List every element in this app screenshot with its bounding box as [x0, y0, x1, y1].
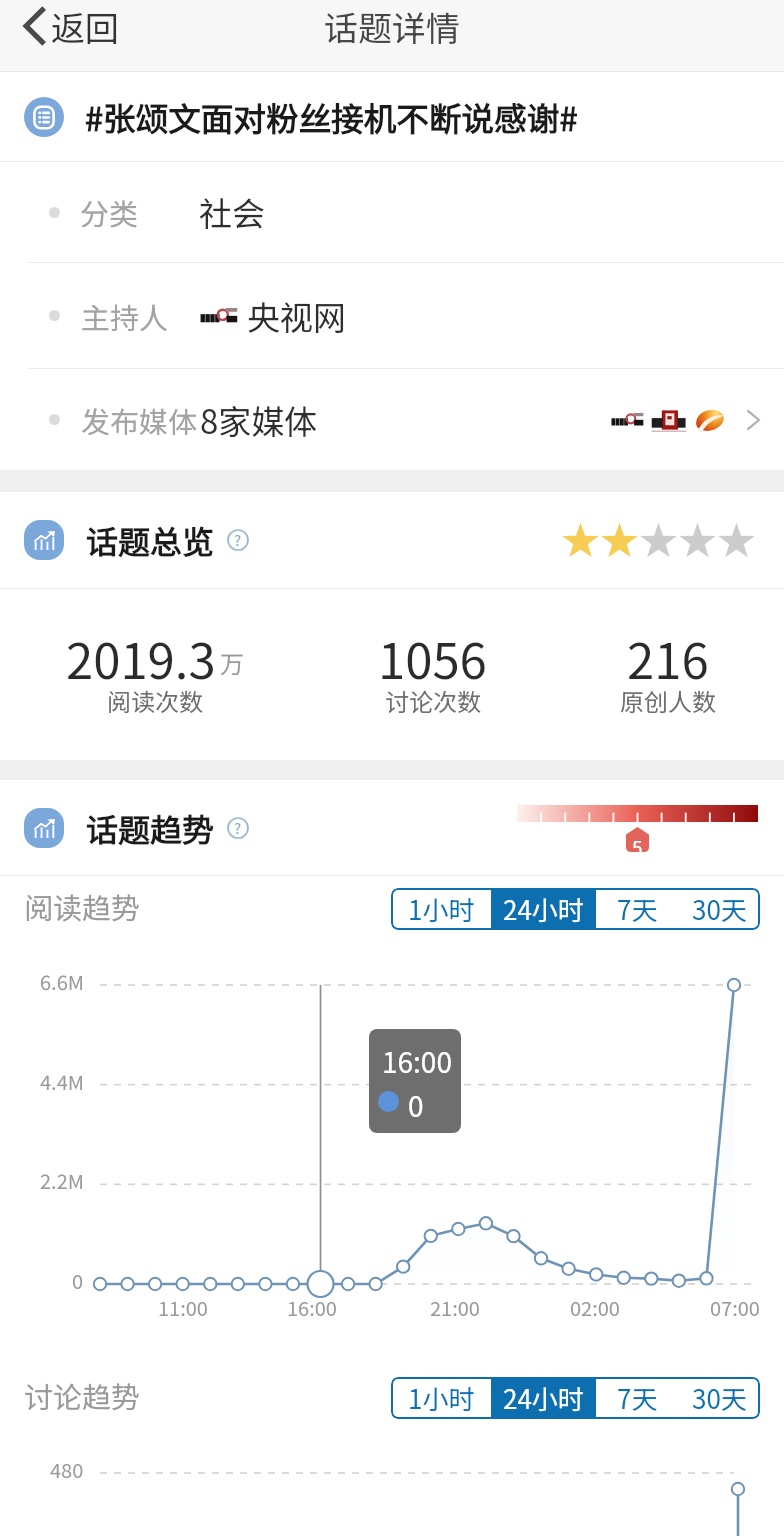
- button[interactable]: Help: [227, 817, 249, 839]
- button[interactable]: 7天: [596, 1377, 678, 1419]
- button[interactable]: 分类: [0, 162, 784, 262]
- staticText: 0: [408, 1085, 424, 1126]
- staticText: 返回: [51, 2, 119, 51]
- staticText: 02:00: [570, 1293, 620, 1322]
- staticText: 1056: [378, 622, 487, 693]
- staticText: ?: [234, 817, 242, 839]
- staticText: 原创人数: [620, 683, 716, 718]
- staticText: 216: [627, 622, 709, 693]
- staticText: 1小时: [408, 890, 475, 928]
- staticText: 7天: [617, 890, 658, 928]
- button[interactable]: 1小时: [391, 888, 491, 930]
- staticText: 21:00: [430, 1293, 480, 1322]
- staticText: 11:00: [158, 1293, 208, 1322]
- button[interactable]: 主持人: [0, 263, 784, 368]
- staticText: 话题详情: [324, 2, 460, 51]
- staticText: 24小时: [503, 1379, 584, 1417]
- button[interactable]: 2019.3: [45, 589, 265, 760]
- staticText: 话题总览: [86, 517, 215, 563]
- staticText: 7天: [617, 1379, 658, 1417]
- button[interactable]: 24小时: [491, 888, 596, 930]
- staticText: 16:00: [287, 1293, 337, 1322]
- other: More media: [746, 410, 760, 430]
- staticText: 讨论趋势: [24, 1374, 141, 1416]
- staticText: 万: [220, 645, 244, 680]
- staticText: 07:00: [710, 1293, 760, 1322]
- button[interactable]: Help: [227, 529, 249, 551]
- staticText: 社会: [199, 188, 265, 236]
- button[interactable]: 7天: [596, 888, 678, 930]
- staticText: 讨论次数: [385, 683, 481, 718]
- staticText: 1小时: [408, 1379, 475, 1417]
- staticText: 阅读次数: [107, 683, 203, 718]
- staticText: 主持人: [81, 295, 169, 337]
- button[interactable]: 24小时: [491, 1377, 596, 1419]
- staticText: 分类: [80, 191, 139, 233]
- staticText: 480: [50, 1455, 84, 1484]
- staticText: 5: [632, 833, 643, 852]
- button[interactable]: 30天: [678, 1377, 760, 1419]
- staticText: 6.6M: [40, 967, 84, 996]
- staticText: 8家媒体: [200, 396, 318, 444]
- staticText: 2.2M: [40, 1166, 84, 1195]
- button[interactable]: 返回: [0, 0, 135, 52]
- staticText: #张颂文面对粉丝接机不断说感谢#: [85, 93, 578, 140]
- staticText: 阅读趋势: [24, 885, 141, 927]
- staticText: 话题趋势: [86, 805, 215, 851]
- button[interactable]: 1小时: [391, 1377, 491, 1419]
- staticText: 30天: [692, 1379, 747, 1417]
- staticText: 4.4M: [40, 1067, 84, 1096]
- button[interactable]: 216: [558, 589, 778, 760]
- staticText: 16:00: [382, 1041, 452, 1082]
- button[interactable]: 发布媒体: [0, 369, 784, 470]
- staticText: 30天: [692, 890, 747, 928]
- button[interactable]: 1056: [322, 589, 542, 760]
- staticText: 0: [72, 1266, 84, 1295]
- button[interactable]: #张颂文面对粉丝接机不断说感谢#: [0, 72, 784, 161]
- staticText: 央视网: [247, 292, 346, 340]
- staticText: ?: [234, 529, 242, 551]
- button[interactable]: 30天: [678, 888, 760, 930]
- staticText: 2019.3: [66, 622, 216, 693]
- staticText: 发布媒体: [81, 399, 198, 441]
- staticText: 24小时: [503, 890, 584, 928]
